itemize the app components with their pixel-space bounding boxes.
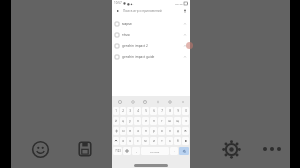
button[interactable]: ы <box>120 127 126 135</box>
staticText: Vo LTE <box>175 2 183 5</box>
staticText: ?123 <box>115 149 121 153</box>
staticText: 3 <box>129 109 131 113</box>
staticText: ы <box>122 129 125 133</box>
button[interactable]: е <box>142 117 149 125</box>
staticText: щ <box>176 119 179 123</box>
staticText: 9 <box>177 109 179 113</box>
staticText: 10:57 <box>114 1 122 5</box>
staticText: 0 <box>185 109 187 113</box>
staticText: е <box>145 119 147 123</box>
button[interactable]: ш <box>166 117 173 125</box>
button[interactable]: Emoji <box>141 98 148 105</box>
button[interactable]: 8 <box>166 107 173 115</box>
staticText: с <box>137 139 139 143</box>
staticText: 7 <box>161 109 163 113</box>
button[interactable]: ф <box>113 127 119 135</box>
button[interactable]: т <box>158 137 165 145</box>
staticText: 6 <box>153 109 155 113</box>
button[interactable]: Shift <box>113 137 119 145</box>
staticText: ⬤ ◆ · <box>127 2 134 5</box>
button[interactable]: , <box>132 147 140 155</box>
button[interactable]: More <box>179 98 186 105</box>
button[interactable]: genshin impact guide <box>112 51 190 62</box>
button[interactable]: Settings <box>218 136 244 162</box>
staticText: я <box>122 139 124 143</box>
button[interactable]: н <box>150 117 157 125</box>
staticText: п <box>145 129 147 133</box>
staticText: 5 <box>145 109 147 113</box>
button[interactable]: Clipboard <box>129 98 136 105</box>
staticText: genshin impact guide <box>122 55 183 59</box>
button[interactable]: в <box>127 127 133 135</box>
button[interactable]: р <box>150 127 157 135</box>
button[interactable]: 9 <box>174 107 181 115</box>
button[interactable]: Backspace <box>182 137 189 145</box>
staticText: 2 <box>122 109 124 113</box>
button[interactable]: 6 <box>150 107 157 115</box>
button[interactable]: о <box>158 127 165 135</box>
button[interactable]: а <box>134 127 141 135</box>
button[interactable]: з <box>182 117 189 125</box>
button[interactable]: и <box>150 137 157 145</box>
button[interactable]: тёмя <box>112 29 190 40</box>
staticText: т <box>161 139 163 143</box>
button[interactable]: 2 <box>120 107 126 115</box>
button[interactable]: 7 <box>158 107 165 115</box>
staticText: о <box>161 129 163 133</box>
staticText: а <box>137 129 139 133</box>
button[interactable]: Reactions <box>27 136 53 162</box>
button[interactable]: щ <box>174 117 181 125</box>
button[interactable]: 1 <box>113 107 119 115</box>
button[interactable]: Theme <box>154 98 161 105</box>
button[interactable]: Settings <box>166 98 173 105</box>
button[interactable]: Русский <box>141 147 169 155</box>
button[interactable]: й <box>113 117 119 125</box>
staticText: ш <box>168 119 171 123</box>
staticText: у <box>129 119 131 123</box>
staticText: . <box>174 149 175 153</box>
staticText: ь <box>169 139 171 143</box>
button[interactable]: мармс <box>112 18 190 29</box>
staticText: м <box>144 139 147 143</box>
staticText: н <box>153 119 155 123</box>
staticText: ж <box>184 129 187 133</box>
button[interactable]: genshin impact 2 <box>112 40 190 51</box>
button[interactable]: к <box>134 117 141 125</box>
button[interactable]: я <box>120 137 126 145</box>
button[interactable]: ч <box>127 137 133 145</box>
button[interactable]: Back <box>114 7 121 14</box>
button[interactable]: Save <box>72 136 98 162</box>
button[interactable]: б <box>174 137 181 145</box>
staticText: тёмя <box>122 33 183 37</box>
button[interactable]: г <box>158 117 165 125</box>
button[interactable]: 4 <box>134 107 141 115</box>
button[interactable]: Translate <box>116 98 123 105</box>
button[interactable]: 0 <box>182 107 189 115</box>
staticText: к <box>137 119 139 123</box>
button[interactable]: More options <box>258 139 286 159</box>
button[interactable]: л <box>166 127 173 135</box>
staticText: Поиск игр и приложений <box>123 9 162 13</box>
staticText: з <box>185 119 187 123</box>
button[interactable]: ь <box>166 137 173 145</box>
button[interactable]: Search <box>179 147 189 155</box>
staticText: , <box>136 149 137 153</box>
button[interactable]: Поиск игр и приложений <box>121 7 181 14</box>
button[interactable]: м <box>142 137 149 145</box>
button[interactable]: ж <box>182 127 189 135</box>
button[interactable]: у <box>127 117 133 125</box>
staticText: л <box>169 129 171 133</box>
staticText: 4 <box>137 109 139 113</box>
button[interactable]: ц <box>120 117 126 125</box>
button[interactable]: 3 <box>127 107 133 115</box>
button[interactable]: Voice search <box>181 7 188 14</box>
button[interactable]: ?123 <box>113 147 122 155</box>
button[interactable]: 5 <box>142 107 149 115</box>
button[interactable]: д <box>174 127 181 135</box>
button[interactable]: с <box>134 137 141 145</box>
staticText: 8 <box>169 109 171 113</box>
staticText: мармс <box>122 22 183 26</box>
button[interactable]: п <box>142 127 149 135</box>
button[interactable]: Emoji key <box>123 147 131 155</box>
